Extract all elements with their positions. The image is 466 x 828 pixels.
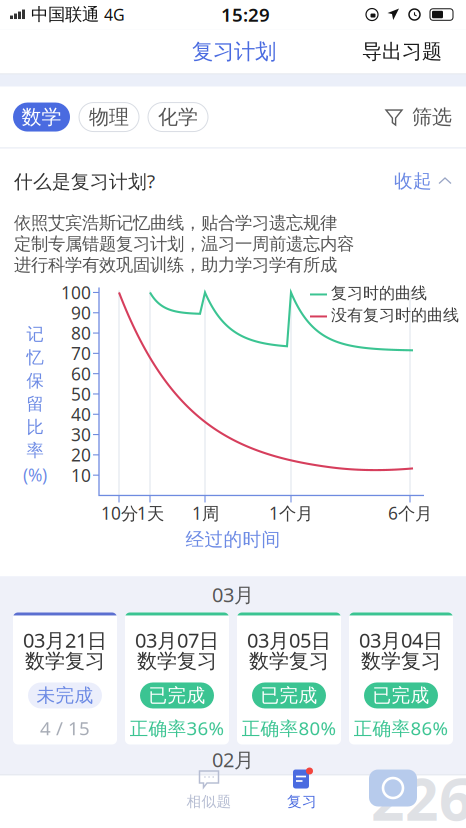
button[interactable]: 相似题 <box>163 765 255 815</box>
button[interactable]: 导出习题 <box>346 30 466 73</box>
staticText: 比 <box>26 417 43 438</box>
staticText: 90 <box>71 301 91 324</box>
staticText: 正确率36% <box>129 716 224 740</box>
button[interactable]: 03月07日 <box>125 612 229 744</box>
staticText: 1周 <box>192 501 219 524</box>
button[interactable]: 收起 <box>394 163 452 198</box>
staticText: 化学 <box>158 105 198 129</box>
staticText: 什么是复习计划? <box>14 169 155 193</box>
staticText: 导出习题 <box>362 39 442 64</box>
button[interactable]: 03月04日 <box>349 612 453 744</box>
button[interactable]: 物理 <box>79 102 139 131</box>
staticText: 中国联通 <box>31 4 99 25</box>
staticText: 进行科学有效巩固训练，助力学习学有所成 <box>14 254 337 276</box>
staticText: 2265 <box>371 759 466 828</box>
staticText: 经过的时间 <box>185 528 280 551</box>
staticText: 50 <box>71 382 91 405</box>
staticText: 6个月 <box>388 501 432 524</box>
staticText: 80 <box>71 322 91 345</box>
staticText: (%) <box>23 463 47 486</box>
staticText: 4G <box>104 4 125 25</box>
staticText: 正确率86% <box>353 716 448 740</box>
staticText: 03月05日 <box>247 627 331 653</box>
staticText: 70 <box>71 342 91 365</box>
staticText: 定制专属错题复习计划，温习一周前遗忘内容 <box>14 233 354 255</box>
staticText: 20 <box>71 443 91 466</box>
button[interactable]: 化学 <box>148 102 208 131</box>
staticText: 1天 <box>137 501 164 524</box>
staticText: 筛选 <box>412 105 452 129</box>
button[interactable]: 组卷 <box>444 765 466 815</box>
staticText: 03月04日 <box>359 627 443 653</box>
staticText: 03月07日 <box>135 627 219 653</box>
staticText: 依照艾宾浩斯记忆曲线，贴合学习遗忘规律 <box>14 212 337 234</box>
staticText: 10 <box>71 464 91 487</box>
staticText: 4 / 15 <box>40 716 90 740</box>
staticText: 收起 <box>394 169 432 192</box>
staticText: 率 <box>26 440 43 461</box>
staticText: 已完成 <box>372 684 429 707</box>
button[interactable]: 复习 <box>256 765 348 815</box>
staticText: 03月21日 <box>23 627 107 653</box>
staticText: 物理 <box>89 105 129 129</box>
staticText: 留 <box>26 393 43 415</box>
staticText: 未完成 <box>36 684 93 707</box>
staticText: 忆 <box>26 347 43 368</box>
staticText: 数学 <box>21 105 61 129</box>
staticText: 1个月 <box>269 501 313 524</box>
button[interactable]: 数学 <box>13 102 70 131</box>
staticText: 60 <box>71 362 91 385</box>
staticText: 正确率80% <box>241 716 336 740</box>
staticText: 15:29 <box>221 2 270 27</box>
staticText: 记 <box>26 323 43 345</box>
staticText: 40 <box>71 403 91 426</box>
staticText: 相似题 <box>186 792 231 810</box>
button[interactable]: Scan question <box>365 765 421 811</box>
staticText: 10分 <box>101 501 138 524</box>
button[interactable]: 03月21日 <box>13 612 117 744</box>
button[interactable]: 03月05日 <box>237 612 341 744</box>
button[interactable]: 筛选 <box>385 97 452 137</box>
staticText: 复习计划 <box>192 38 276 65</box>
staticText: 数学复习 <box>361 649 441 673</box>
staticText: 03月 <box>212 581 254 608</box>
staticText: 数学复习 <box>137 649 217 673</box>
staticText: 已完成 <box>148 684 205 707</box>
staticText: 没有复习时的曲线 <box>331 305 459 325</box>
staticText: 已完成 <box>260 684 317 707</box>
staticText: 数学复习 <box>249 649 329 673</box>
staticText: 02月 <box>212 746 254 773</box>
staticText: 30 <box>71 423 91 446</box>
staticText: 数学复习 <box>25 649 105 673</box>
staticText: 复习 <box>287 792 317 810</box>
staticText: 保 <box>26 370 43 391</box>
staticText: 复习时的曲线 <box>331 283 427 303</box>
staticText: 100 <box>61 281 91 304</box>
